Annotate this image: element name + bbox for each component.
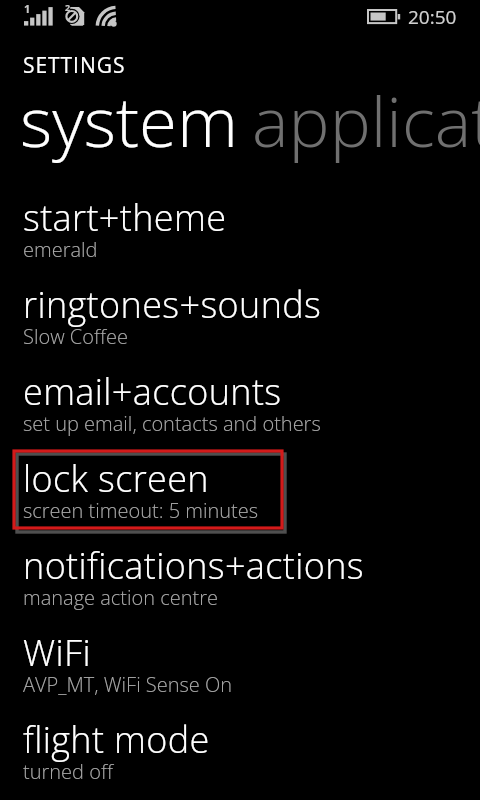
staticText: manage action centre: [23, 584, 219, 611]
staticText: turned off: [23, 758, 113, 785]
staticText: WiFi: [23, 628, 92, 677]
button[interactable]: applications: [252, 73, 480, 167]
staticText: 2: [65, 1, 71, 13]
button[interactable]: flight mode: [0, 701, 480, 788]
staticText: start+theme: [23, 193, 227, 242]
staticText: 1: [24, 1, 31, 16]
button[interactable]: email+accounts: [0, 353, 480, 440]
staticText: emerald: [23, 236, 98, 263]
staticText: notifications+actions: [23, 541, 364, 590]
button[interactable]: lock screen: [0, 440, 480, 527]
button[interactable]: notifications+actions: [0, 527, 480, 614]
staticText: system: [20, 73, 238, 167]
button[interactable]: system: [20, 73, 238, 167]
staticText: Slow Coffee: [23, 323, 128, 350]
staticText: SETTINGS: [23, 51, 126, 80]
button[interactable]: start+theme: [0, 179, 480, 266]
staticText: email+accounts: [23, 367, 282, 416]
staticText: applications: [252, 73, 480, 167]
staticText: lock screen: [23, 454, 209, 503]
button[interactable]: SETTINGS: [14, 47, 138, 84]
staticText: 20:50: [408, 4, 457, 30]
staticText: set up email, contacts and others: [23, 410, 321, 437]
button[interactable]: WiFi: [0, 614, 480, 701]
staticText: AVP_MT, WiFi Sense On: [23, 671, 233, 698]
staticText: ringtones+sounds: [23, 280, 322, 329]
staticText: flight mode: [23, 715, 210, 764]
button[interactable]: ringtones+sounds: [0, 266, 480, 353]
staticText: screen timeout: 5 minutes: [23, 497, 259, 524]
other: Highlighted: lock screen: [12, 449, 286, 533]
